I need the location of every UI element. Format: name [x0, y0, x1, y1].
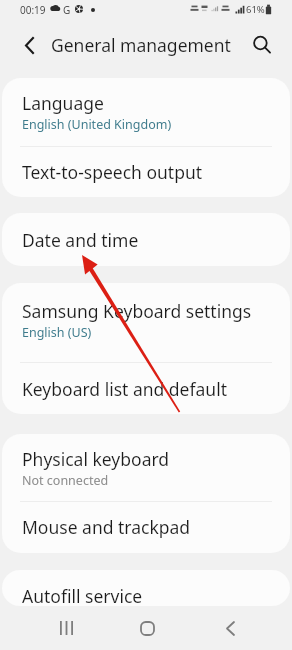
button[interactable]: Mouse and trackpad	[2, 502, 290, 553]
button[interactable]: Recents	[50, 612, 82, 644]
staticText: Not connected	[22, 472, 109, 489]
staticText: Mouse and trackpad	[22, 515, 191, 539]
staticText: Physical keyboard	[22, 447, 170, 471]
button[interactable]: Autofill service	[2, 570, 290, 606]
staticText: Language	[22, 91, 104, 115]
staticText: English (US)	[22, 324, 92, 341]
button[interactable]: Language	[2, 78, 290, 146]
staticText: 00:19	[20, 3, 46, 17]
staticText: Autofill service	[22, 584, 143, 606]
staticText: 61%	[246, 3, 265, 16]
button[interactable]: Home	[131, 612, 163, 644]
button[interactable]: Back	[214, 612, 246, 644]
staticText: English (United Kingdom)	[22, 116, 172, 133]
button[interactable]: Samsung Keyboard settings	[2, 283, 290, 362]
staticText: General management	[51, 33, 231, 57]
button[interactable]: Search	[244, 27, 280, 63]
staticText: Text-to-speech output	[22, 160, 203, 184]
button[interactable]: Back	[11, 27, 47, 63]
staticText: Keyboard list and default	[22, 377, 227, 401]
button[interactable]: Date and time	[2, 213, 290, 266]
button[interactable]: Keyboard list and default	[2, 363, 290, 414]
staticText: Date and time	[22, 228, 139, 252]
staticText: G	[63, 3, 71, 17]
staticText: Samsung Keyboard settings	[22, 299, 252, 323]
button[interactable]: Physical keyboard	[2, 434, 290, 501]
button[interactable]: Text-to-speech output	[2, 147, 290, 197]
